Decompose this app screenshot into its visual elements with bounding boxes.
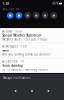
- button[interactable]: Auto-rotate: [42, 12, 48, 19]
- button[interactable]: Bluetooth: [16, 12, 22, 19]
- button[interactable]: Gmail · now: [0, 28, 64, 43]
- button[interactable]: Calendar · 1h: [0, 58, 64, 73]
- staticText: in 15 minutes - Meeting room 3: [2, 68, 48, 71]
- staticText: Messages · 12m: [5, 45, 26, 48]
- staticText: Sun, Jun 30: [2, 7, 19, 11]
- button[interactable]: Back: [15, 90, 16, 92]
- button[interactable]: Wi-Fi: [7, 12, 13, 19]
- button[interactable]: Do Not Disturb: [24, 12, 31, 19]
- button[interactable]: Recents: [48, 90, 49, 92]
- staticText: Special Weather Statement: [2, 34, 41, 37]
- staticText: Manage notifications: [2, 76, 30, 80]
- staticText: 46%: [52, 2, 58, 5]
- button[interactable]: Battery Saver: [50, 12, 57, 19]
- staticText: Calendar · 1h: [5, 60, 24, 63]
- button[interactable]: Messages · 12m: [0, 43, 64, 58]
- staticText: 1:38: [2, 1, 9, 6]
- button[interactable]: Flashlight: [33, 12, 40, 19]
- staticText: Are you coming home for dinner?: [2, 53, 50, 56]
- staticText: Mom: [2, 49, 9, 52]
- staticText: Weather alert - 1:05 pm, 1 hour: [2, 38, 47, 41]
- staticText: Team standup: [2, 64, 23, 67]
- button[interactable]: Manage notifications: [0, 74, 64, 82]
- button[interactable]: Home: [31, 90, 33, 92]
- staticText: Gmail · now: [5, 30, 21, 33]
